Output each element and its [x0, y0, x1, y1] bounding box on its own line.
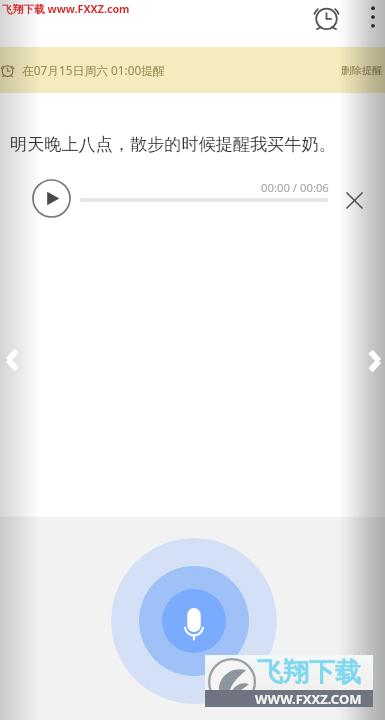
- staticText: 飞翔下载 www.FXXZ.com: [2, 2, 130, 17]
- button[interactable]: Voice input: [111, 538, 277, 704]
- button[interactable]: Previous: [0, 344, 24, 376]
- button[interactable]: Close: [338, 184, 371, 217]
- staticText: 飞翔下载: [257, 656, 361, 689]
- button[interactable]: Alarm: [303, 0, 349, 35]
- staticText: 明天晚上八点，散步的时候提醒我买牛奶。: [10, 133, 336, 155]
- staticText: WWW.FXXZ.COM: [255, 690, 362, 707]
- button[interactable]: Play: [27, 174, 76, 223]
- staticText: 删除提醒: [341, 64, 383, 77]
- staticText: 00:00 / 00:06: [261, 180, 329, 195]
- button[interactable]: More options: [355, 0, 385, 34]
- staticText: 在07月15日周六 01:00提醒: [22, 62, 165, 78]
- button[interactable]: 在07月15日周六 01:00提醒: [0, 47, 385, 93]
- button[interactable]: Next: [363, 345, 385, 377]
